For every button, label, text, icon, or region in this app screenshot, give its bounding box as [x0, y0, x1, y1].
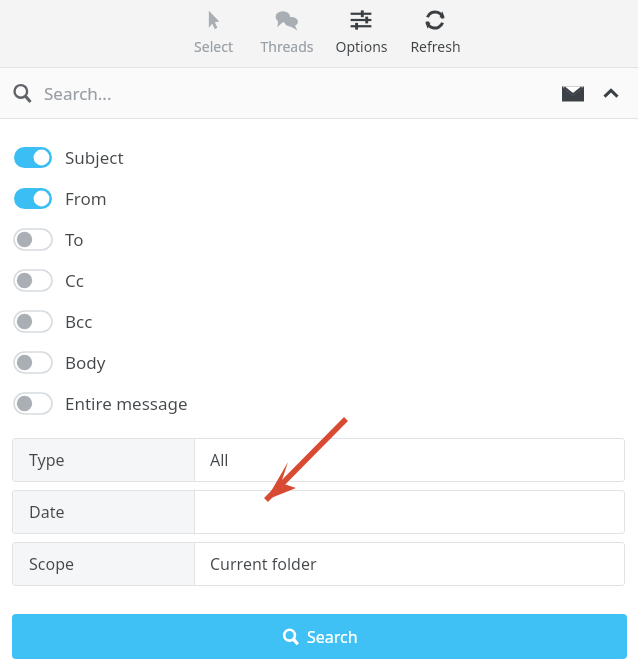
staticText: Type [29, 449, 65, 471]
button[interactable]: Messages [556, 77, 590, 111]
staticText: Scope [29, 553, 75, 575]
button[interactable]: Scope [12, 542, 625, 586]
staticText: From [65, 187, 107, 210]
staticText: Search [307, 626, 358, 648]
staticText: Refresh [410, 37, 461, 56]
staticText: To [65, 228, 84, 251]
staticText: Threads [260, 37, 314, 56]
button[interactable]: Threads [250, 7, 324, 56]
staticText: Cc [65, 269, 84, 292]
staticText: Bcc [65, 310, 93, 333]
staticText: Body [65, 351, 106, 374]
button[interactable]: Body [0, 342, 638, 383]
button[interactable]: Bcc [0, 301, 638, 342]
staticText: Entire message [65, 392, 188, 415]
button[interactable]: Subject [0, 137, 638, 178]
button[interactable]: To [0, 219, 638, 260]
button[interactable]: Cc [0, 260, 638, 301]
button[interactable]: Collapse [596, 79, 626, 109]
button[interactable]: Options [324, 7, 398, 56]
button[interactable]: Type [12, 438, 625, 482]
staticText: Subject [65, 146, 124, 169]
button[interactable]: From [0, 178, 638, 219]
button[interactable]: Select [176, 7, 250, 56]
staticText: Select [194, 37, 233, 56]
button[interactable]: Date [12, 490, 625, 534]
button[interactable]: Refresh [398, 7, 472, 56]
staticText: Date [29, 501, 65, 523]
button[interactable]: Entire message [0, 383, 638, 424]
staticText: Current folder [210, 553, 317, 575]
button[interactable]: Search [12, 614, 627, 659]
staticText: Search... [44, 82, 112, 105]
staticText: All [210, 449, 229, 471]
staticText: Options [335, 37, 388, 56]
